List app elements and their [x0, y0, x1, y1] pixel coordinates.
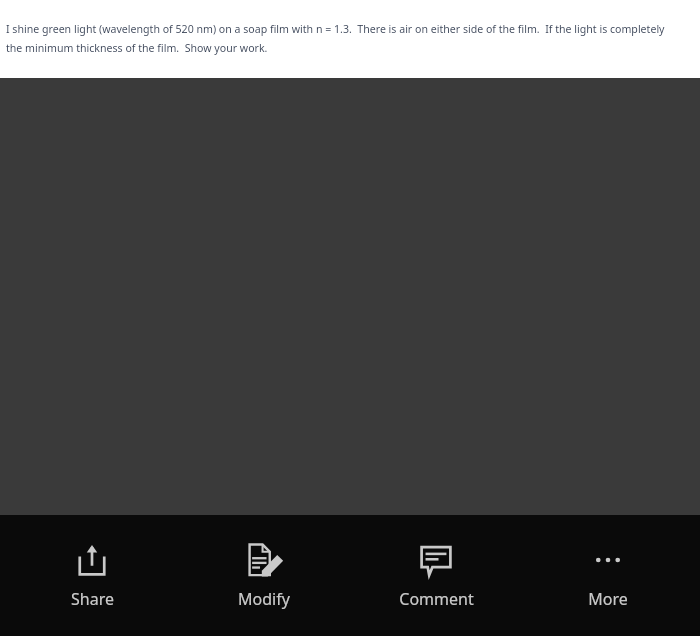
- staticText: I shine green light (wavelength of 520 n…: [6, 22, 692, 36]
- staticText: the minimum thickness of the film. Show …: [6, 41, 268, 55]
- staticText: Share: [71, 588, 114, 610]
- staticText: Comment: [399, 588, 474, 610]
- button[interactable]: Modify: [184, 515, 344, 636]
- button[interactable]: Comment: [356, 515, 516, 636]
- button[interactable]: Share: [12, 515, 172, 636]
- button[interactable]: More: [528, 515, 688, 636]
- staticText: More: [588, 588, 628, 610]
- staticText: Modify: [238, 588, 290, 610]
